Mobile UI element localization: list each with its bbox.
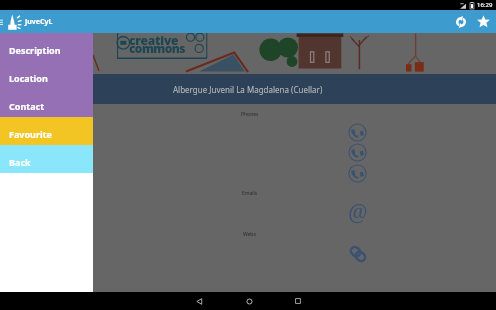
staticText: JuveCyL [25, 17, 53, 27]
staticText: Back [9, 156, 31, 168]
button[interactable]: Favourite [0, 117, 93, 145]
button[interactable]: Refresh [449, 10, 472, 33]
staticText: Phones [241, 111, 259, 118]
button[interactable]: Back [189, 292, 209, 310]
staticText: 16:29 [477, 1, 493, 9]
staticText: Description [9, 44, 61, 56]
button[interactable]: Call phone number 1 [348, 123, 367, 142]
staticText: Contact [9, 100, 45, 112]
staticText: @ [348, 198, 368, 227]
button[interactable]: Send email [341, 196, 374, 229]
button[interactable]: Back [0, 145, 93, 173]
button[interactable]: Location [0, 61, 93, 89]
button[interactable]: Description [0, 33, 93, 61]
button[interactable]: Open web site [348, 244, 368, 264]
staticText: creative [129, 32, 179, 48]
button[interactable]: Contact [0, 89, 93, 117]
staticText: Webs [243, 231, 256, 238]
button[interactable]: Recent apps [288, 292, 308, 310]
button[interactable]: Home [239, 292, 259, 310]
staticText: Albergue Juvenil La Magdalena (Cuellar) [173, 84, 323, 95]
button[interactable]: Call phone number 3 [348, 164, 367, 183]
button[interactable]: Add to favourites [472, 10, 495, 33]
staticText: commons [129, 40, 185, 56]
button[interactable]: Open navigation drawer [0, 10, 6, 33]
staticText: Location [9, 72, 48, 84]
button[interactable]: Call phone number 2 [348, 143, 367, 162]
staticText: Emails [242, 190, 258, 197]
staticText: Favourite [9, 128, 52, 140]
